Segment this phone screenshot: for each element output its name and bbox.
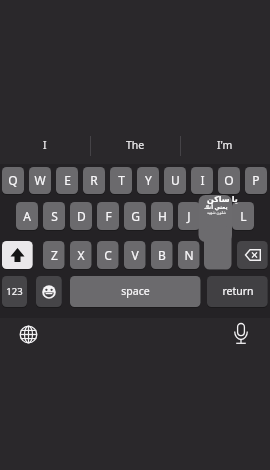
- button[interactable]: H: [151, 202, 173, 231]
- button[interactable]: C: [97, 241, 119, 270]
- button[interactable]: [14, 320, 43, 349]
- staticText: space: [121, 284, 150, 298]
- staticText: J: [187, 208, 191, 224]
- staticText: U: [171, 172, 180, 188]
- staticText: I: [43, 138, 47, 152]
- button[interactable]: X: [70, 241, 92, 270]
- staticText: V: [131, 247, 139, 263]
- staticText: E: [64, 172, 71, 188]
- button[interactable]: D: [70, 202, 92, 231]
- button[interactable]: E: [56, 167, 78, 195]
- staticText: G: [131, 208, 140, 224]
- button[interactable]: Q: [2, 167, 24, 195]
- button[interactable]: [237, 241, 268, 270]
- button[interactable]: F: [97, 202, 119, 231]
- button[interactable]: U: [164, 167, 186, 195]
- staticText: يعني أنك: [204, 203, 228, 210]
- button[interactable]: B: [151, 241, 173, 270]
- staticText: F: [105, 208, 112, 224]
- staticText: T: [118, 172, 125, 188]
- staticText: C: [104, 247, 112, 263]
- staticText: I'm: [217, 138, 233, 152]
- staticText: D: [77, 208, 86, 224]
- button[interactable]: A: [16, 202, 38, 231]
- staticText: A: [23, 208, 31, 224]
- button[interactable]: [196, 193, 236, 272]
- staticText: R: [90, 172, 98, 188]
- staticText: O: [224, 172, 234, 188]
- button[interactable]: G: [124, 202, 146, 231]
- staticText: B: [158, 247, 166, 263]
- staticText: return: [222, 284, 254, 298]
- staticText: L: [240, 208, 247, 224]
- staticText: 123: [6, 285, 23, 298]
- staticText: Q: [8, 172, 18, 188]
- button[interactable]: space: [70, 276, 201, 308]
- button[interactable]: W: [29, 167, 51, 195]
- button[interactable]: [36, 276, 62, 308]
- staticText: X: [77, 247, 85, 263]
- button[interactable]: [2, 241, 33, 270]
- button[interactable]: V: [124, 241, 146, 270]
- button[interactable]: L: [232, 202, 254, 231]
- button[interactable]: S: [43, 202, 65, 231]
- button[interactable]: O: [218, 167, 240, 195]
- staticText: Y: [145, 172, 152, 188]
- button[interactable]: K: [205, 202, 227, 231]
- staticText: The: [126, 138, 145, 152]
- button[interactable]: 123: [2, 276, 27, 308]
- button[interactable]: P: [245, 167, 267, 195]
- staticText: H: [158, 208, 167, 224]
- staticText: K: [212, 208, 220, 224]
- staticText: P: [252, 172, 260, 188]
- button[interactable]: The: [90, 131, 180, 159]
- button[interactable]: J: [178, 202, 200, 231]
- button[interactable]: I'm: [180, 131, 270, 159]
- button[interactable]: I: [191, 167, 213, 195]
- button[interactable]: return: [207, 276, 268, 308]
- button[interactable]: [227, 318, 255, 348]
- button[interactable]: T: [110, 167, 132, 195]
- button[interactable]: Z: [43, 241, 65, 270]
- staticText: شلون شهيد: [207, 210, 227, 215]
- staticText: N: [184, 247, 194, 263]
- button[interactable]: N: [178, 241, 200, 270]
- button[interactable]: M: [205, 241, 227, 270]
- staticText: W: [34, 172, 46, 188]
- button[interactable]: I: [0, 131, 90, 159]
- button[interactable]: R: [83, 167, 105, 195]
- staticText: Z: [51, 247, 58, 263]
- button[interactable]: Y: [137, 167, 159, 195]
- staticText: يا ساكن: [207, 193, 238, 204]
- staticText: I: [200, 172, 205, 188]
- staticText: S: [51, 208, 58, 224]
